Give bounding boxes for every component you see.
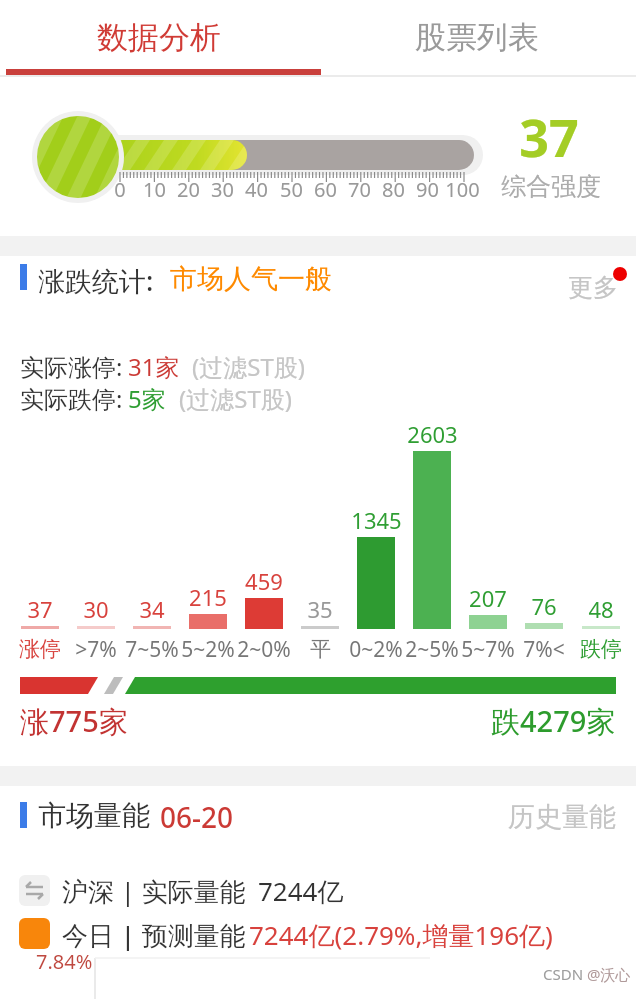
staticText: 7.84%	[36, 948, 93, 975]
button[interactable]: 历史量能	[508, 800, 616, 834]
staticText: 股票列表	[415, 18, 539, 57]
staticText: 跌停	[580, 636, 622, 662]
button[interactable]: 数据分析	[0, 0, 318, 75]
staticText: 10	[143, 176, 166, 203]
staticText: 实际跌停:	[20, 382, 123, 415]
staticText: 459	[245, 566, 283, 596]
staticText: 40	[245, 176, 268, 203]
staticText: CSDN @沃心	[543, 964, 631, 984]
staticText: 76	[531, 591, 557, 621]
staticText: 实际涨停:	[20, 350, 123, 383]
staticText: 50	[280, 176, 303, 203]
staticText: 5~7%	[461, 635, 515, 664]
staticText: 综合强度	[501, 171, 601, 202]
staticText: 0~2%	[349, 635, 403, 664]
staticText: 2~0%	[237, 635, 291, 664]
staticText: 215	[189, 582, 227, 612]
button[interactable]	[0, 912, 636, 956]
button[interactable]	[0, 868, 636, 912]
staticText: 7244亿	[258, 873, 344, 909]
staticText: 今日 | 预测量能	[62, 917, 246, 953]
staticText: 100	[445, 176, 480, 203]
staticText: 06-20	[160, 798, 234, 836]
staticText: 涨停	[19, 636, 61, 662]
staticText: 30	[83, 594, 109, 624]
staticText: 37	[27, 594, 53, 624]
staticText: (过滤ST股)	[192, 350, 305, 383]
staticText: 60	[314, 176, 337, 203]
staticText: 7~5%	[125, 635, 179, 664]
button[interactable]: 更多	[568, 272, 618, 303]
staticText: 0	[114, 176, 126, 203]
staticText: 34	[139, 594, 165, 624]
staticText: 90	[416, 176, 439, 203]
staticText: 70	[348, 176, 371, 203]
staticText: 30	[211, 176, 234, 203]
staticText: 5~2%	[181, 635, 235, 664]
staticText: 31家	[128, 350, 180, 383]
staticText: 35	[307, 594, 333, 624]
staticText: 207	[469, 583, 507, 613]
staticText: >7%	[75, 635, 117, 664]
staticText: 涨775家	[20, 701, 128, 741]
staticText: 市场量能	[38, 798, 150, 833]
staticText: 1345	[351, 505, 402, 535]
staticText: 80	[382, 176, 405, 203]
staticText: 平	[310, 636, 331, 662]
staticText: 7%<	[523, 635, 565, 664]
staticText: 沪深 | 实际量能	[62, 873, 246, 909]
staticText: 48	[588, 594, 614, 624]
button[interactable]: 股票列表	[318, 0, 636, 75]
staticText: 市场人气一般	[170, 262, 332, 296]
staticText: 涨跌统计:	[38, 262, 154, 299]
staticText: 跌4279家	[491, 701, 616, 741]
staticText: 37	[519, 101, 579, 161]
staticText: 7244亿(2.79%,增量196亿)	[249, 917, 553, 953]
staticText: 2603	[407, 419, 458, 449]
staticText: (过滤ST股)	[179, 382, 292, 415]
staticText: 20	[177, 176, 200, 203]
staticText: 5家	[128, 382, 166, 415]
staticText: 数据分析	[97, 18, 221, 57]
staticText: 2~5%	[405, 635, 459, 664]
